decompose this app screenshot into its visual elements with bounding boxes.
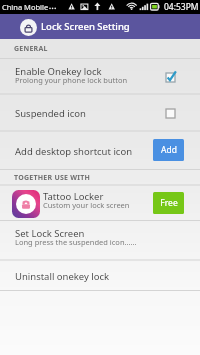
staticText: Suspended icon — [15, 107, 162, 120]
staticText: 04:53PM — [164, 1, 199, 13]
staticText: Custom your lock screen — [43, 200, 130, 210]
staticText: Uninstall onekey lock — [15, 270, 190, 283]
button[interactable]: Add — [153, 139, 184, 161]
staticText: GENERAL — [14, 44, 48, 54]
button[interactable]: Disabled — [162, 105, 178, 121]
button[interactable]: Set Lock Screen — [0, 221, 200, 260]
staticText: Enable Onekey lock — [15, 65, 102, 78]
button[interactable]: Tattoo Locker — [0, 186, 200, 221]
staticText: Tattoo Locker — [43, 190, 104, 203]
staticText: Free — [160, 197, 178, 209]
button[interactable]: Uninstall onekey lock — [0, 261, 200, 291]
staticText: Set Lock Screen — [15, 227, 85, 240]
button[interactable]: Enabled — [162, 69, 178, 85]
staticText: Add — [161, 144, 177, 156]
button[interactable]: Add desktop shortcut icon — [0, 132, 200, 170]
staticText: Long press the suspended icon...... — [15, 237, 137, 247]
staticText: China Mobile — [2, 2, 49, 12]
button[interactable]: Suspended icon — [0, 95, 200, 131]
staticText: Add desktop shortcut icon — [15, 145, 153, 158]
staticText: TOGETHER USE WITH — [14, 173, 91, 183]
button[interactable]: Enable Onekey lock — [0, 59, 200, 94]
button[interactable]: Free — [153, 192, 184, 214]
staticText: Prolong your phone lock button — [15, 75, 128, 85]
staticText: Lock Screen Setting — [41, 20, 130, 33]
